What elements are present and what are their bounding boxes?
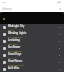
staticText: Midnight City [8, 24, 25, 28]
staticText: Sunflower [8, 45, 21, 49]
staticText: SZA [8, 56, 13, 59]
button[interactable]: Good Days [0, 52, 64, 59]
staticText: As It Was [8, 66, 20, 70]
button[interactable]: Midnight City [0, 24, 64, 31]
staticText: M83 [8, 28, 13, 31]
staticText: ● ● [57, 1, 62, 4]
staticText: ☰ [59, 8, 62, 11]
staticText: Heat Waves [8, 59, 23, 63]
button[interactable]: Levitating [0, 38, 64, 45]
button[interactable]: Blinding Lights [0, 31, 64, 38]
staticText: Levitating [8, 38, 20, 42]
staticText: Blinding Lights [8, 31, 27, 35]
staticText: Post Malone [8, 49, 22, 52]
staticText: Dua Lipa [8, 42, 18, 45]
button[interactable]: Heat Waves [0, 59, 64, 66]
button[interactable]: Play [0, 12, 64, 24]
button[interactable]: Sunflower [0, 45, 64, 52]
staticText: Glass Animals [8, 63, 24, 66]
staticText: 9:41 [2, 1, 7, 4]
staticText: Library [2, 7, 12, 11]
staticText: Good Days [8, 52, 22, 56]
button[interactable]: As It Was [0, 66, 64, 72]
staticText: The Weeknd [8, 35, 22, 38]
